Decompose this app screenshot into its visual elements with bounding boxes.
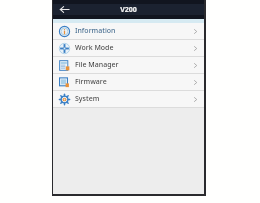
staticText: Firmware: [75, 77, 107, 87]
button[interactable]: Information: [53, 23, 204, 39]
button[interactable]: Work Mode: [53, 40, 204, 56]
staticText: File Manager: [75, 60, 119, 70]
button[interactable]: System: [53, 91, 204, 107]
button[interactable]: File Manager: [53, 57, 204, 73]
staticText: Work Mode: [75, 43, 114, 53]
button[interactable]: Back: [56, 1, 73, 18]
staticText: Information: [75, 26, 116, 36]
button[interactable]: Firmware: [53, 74, 204, 90]
staticText: V200: [120, 5, 137, 15]
staticText: System: [75, 94, 100, 104]
